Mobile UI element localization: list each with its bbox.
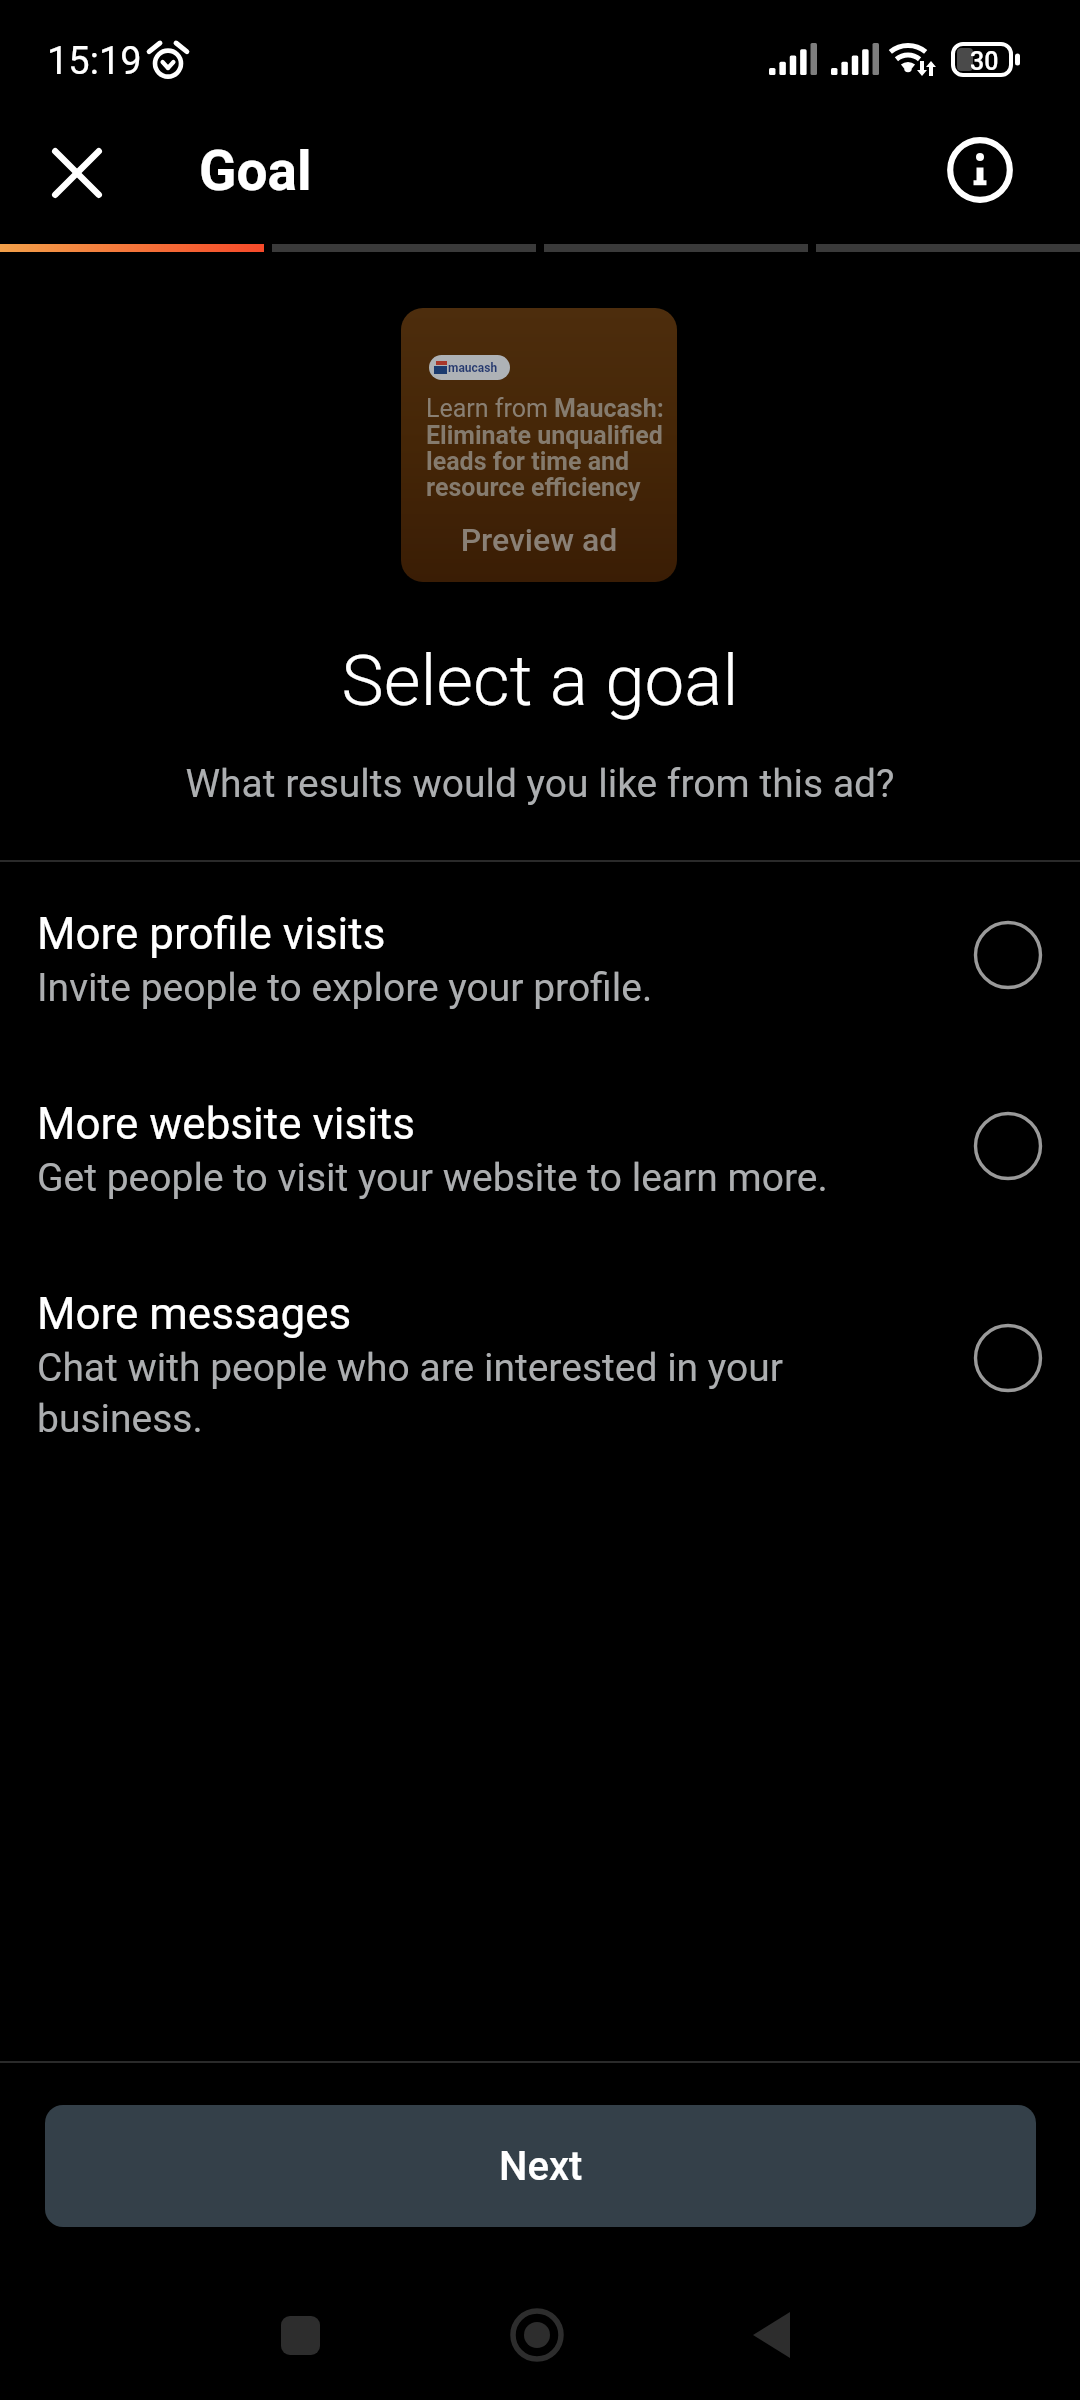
staticText: What results would you like from this ad… [0, 761, 1080, 807]
staticText: Select a goal [0, 639, 1080, 722]
button[interactable]: Information [937, 127, 1023, 213]
staticText: Invite people to explore your profile. [37, 965, 653, 1011]
staticText: Preview ad [401, 521, 677, 559]
button[interactable]: More profile visits [0, 860, 1080, 1050]
staticText: Get people to visit your website to lear… [37, 1155, 828, 1201]
button[interactable]: More messages [0, 1240, 1080, 1430]
staticText: Goal [199, 139, 312, 203]
button[interactable]: Back [731, 2295, 811, 2375]
staticText: 30 [970, 47, 999, 76]
button[interactable]: Next [45, 2105, 1036, 2227]
staticText: Learn from Maucash: Eliminate unqualifie… [426, 394, 664, 502]
button[interactable]: Recent apps [260, 2295, 340, 2375]
button[interactable]: More website visits [0, 1050, 1080, 1240]
staticText: More website visits [37, 1098, 415, 1150]
staticText: 15:19 [47, 39, 142, 84]
button[interactable]: Home [497, 2295, 577, 2375]
staticText: More profile visits [37, 908, 386, 960]
staticText: maucash [448, 361, 498, 375]
staticText: Chat with people who are interested in y… [37, 1345, 783, 1441]
staticText: Next [499, 2143, 583, 2190]
button[interactable]: Preview ad [401, 308, 677, 582]
button[interactable]: Close [29, 125, 125, 221]
staticText: More messages [37, 1288, 352, 1340]
